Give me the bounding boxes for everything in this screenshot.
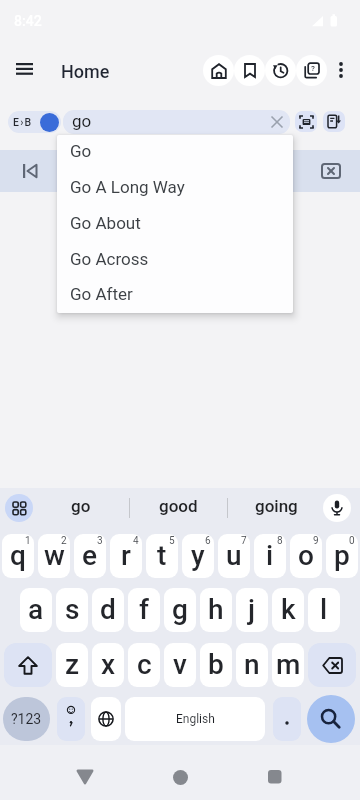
staticText: g bbox=[172, 593, 188, 626]
button[interactable] bbox=[4, 643, 52, 687]
button[interactable]: s bbox=[56, 588, 88, 632]
button[interactable]: v bbox=[164, 643, 196, 687]
button[interactable]: w bbox=[38, 534, 70, 578]
button[interactable]: t bbox=[146, 534, 178, 578]
button[interactable] bbox=[307, 695, 355, 743]
button[interactable] bbox=[234, 55, 265, 86]
staticText: Go Across bbox=[70, 249, 149, 269]
button[interactable]: x bbox=[92, 643, 124, 687]
button[interactable] bbox=[91, 697, 121, 741]
button[interactable]: going bbox=[227, 488, 325, 528]
button[interactable] bbox=[8, 53, 41, 84]
staticText: 1 bbox=[25, 535, 31, 547]
button[interactable]: English bbox=[125, 697, 265, 741]
staticText: 6 bbox=[205, 535, 211, 547]
button[interactable]: l bbox=[308, 588, 340, 632]
staticText: ? bbox=[311, 64, 315, 73]
button[interactable] bbox=[5, 494, 33, 522]
button[interactable]: g bbox=[164, 588, 196, 632]
staticText: t bbox=[157, 539, 167, 572]
button[interactable]: Go About bbox=[57, 207, 293, 243]
staticText: 4 bbox=[133, 535, 139, 547]
staticText: w bbox=[44, 539, 65, 572]
staticText: j bbox=[248, 593, 256, 626]
staticText: v bbox=[173, 648, 187, 681]
button[interactable]: i bbox=[254, 534, 286, 578]
staticText: English bbox=[176, 712, 215, 726]
button[interactable] bbox=[273, 697, 301, 741]
button[interactable]: f bbox=[128, 588, 160, 632]
button[interactable] bbox=[12, 153, 48, 189]
button[interactable] bbox=[313, 153, 349, 189]
staticText: z bbox=[65, 648, 80, 681]
staticText: 3 bbox=[97, 535, 103, 547]
staticText: 2 bbox=[61, 535, 67, 547]
staticText: good bbox=[159, 496, 198, 516]
button[interactable]: good bbox=[129, 488, 227, 528]
button[interactable]: d bbox=[92, 588, 124, 632]
staticText: c bbox=[137, 648, 152, 681]
button[interactable]: j bbox=[236, 588, 268, 632]
staticText: n bbox=[244, 648, 260, 681]
staticText: x bbox=[101, 648, 116, 681]
button[interactable] bbox=[65, 757, 105, 797]
staticText: h bbox=[208, 593, 224, 626]
staticText: u bbox=[226, 539, 242, 572]
staticText: o bbox=[298, 539, 314, 572]
staticText: r bbox=[121, 539, 131, 572]
button[interactable]: z bbox=[56, 643, 88, 687]
staticText: l bbox=[320, 593, 328, 626]
button[interactable]: ?123 bbox=[3, 697, 50, 741]
staticText: Home bbox=[61, 61, 110, 82]
staticText: Go After bbox=[70, 284, 133, 304]
button[interactable]: k bbox=[272, 588, 304, 632]
button[interactable] bbox=[323, 494, 351, 522]
button[interactable]: Go After bbox=[57, 279, 293, 313]
staticText: go bbox=[72, 111, 92, 131]
button[interactable] bbox=[265, 55, 296, 86]
button[interactable] bbox=[330, 58, 352, 82]
button[interactable]: c bbox=[128, 643, 160, 687]
button[interactable]: ? bbox=[296, 55, 327, 86]
staticText: 0 bbox=[349, 535, 355, 547]
button[interactable]: o bbox=[290, 534, 322, 578]
button[interactable]: E›B bbox=[8, 111, 61, 133]
button[interactable]: b bbox=[200, 643, 232, 687]
button[interactable] bbox=[308, 643, 356, 687]
button[interactable]: a bbox=[20, 588, 52, 632]
button[interactable] bbox=[295, 111, 317, 132]
button[interactable]: n bbox=[236, 643, 268, 687]
button[interactable]: Go A Long Way bbox=[57, 171, 293, 207]
staticText: E›B bbox=[13, 116, 33, 128]
button[interactable]: q bbox=[2, 534, 34, 578]
button[interactable]: Go bbox=[57, 135, 293, 171]
staticText: 8:42 bbox=[14, 13, 42, 29]
staticText: ?123 bbox=[11, 711, 42, 727]
button[interactable] bbox=[57, 697, 85, 741]
button[interactable] bbox=[203, 55, 234, 86]
button[interactable] bbox=[323, 111, 345, 132]
button[interactable]: go bbox=[63, 110, 290, 134]
staticText: k bbox=[281, 593, 296, 626]
button[interactable]: p bbox=[326, 534, 358, 578]
button[interactable]: Go Across bbox=[57, 243, 293, 279]
staticText: going bbox=[255, 496, 298, 516]
staticText: m bbox=[276, 648, 301, 681]
staticText: i bbox=[266, 539, 274, 572]
button[interactable]: h bbox=[200, 588, 232, 632]
staticText: a bbox=[28, 593, 44, 626]
staticText: 9 bbox=[313, 535, 319, 547]
button[interactable]: go bbox=[33, 488, 129, 528]
button[interactable]: y bbox=[182, 534, 214, 578]
staticText: b bbox=[208, 648, 224, 681]
staticText: y bbox=[191, 539, 205, 572]
button[interactable]: u bbox=[218, 534, 250, 578]
button[interactable]: m bbox=[272, 643, 304, 687]
button[interactable]: r bbox=[110, 534, 142, 578]
button[interactable]: e bbox=[74, 534, 106, 578]
staticText: 8 bbox=[277, 535, 283, 547]
staticText: Go A Long Way bbox=[70, 177, 185, 197]
button[interactable] bbox=[160, 757, 200, 797]
staticText: e bbox=[82, 539, 98, 572]
button[interactable] bbox=[255, 757, 295, 797]
